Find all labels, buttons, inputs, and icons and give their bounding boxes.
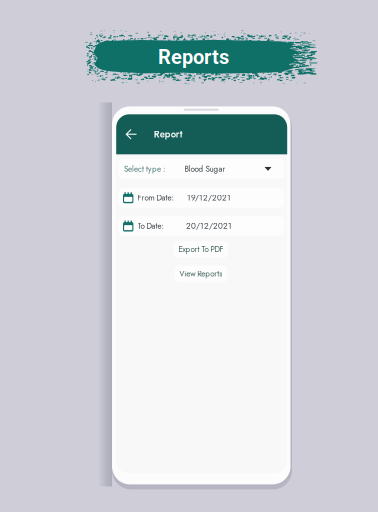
staticText: 20/12/2021 [186,220,232,232]
button[interactable]: View Reports [175,266,227,282]
staticText: To Date: [137,220,163,232]
button[interactable]: Back [116,120,143,148]
button[interactable]: Export To PDF [174,241,228,258]
staticText: 19/12/2021 [187,192,231,204]
button[interactable]: To Date: [118,216,284,236]
staticText: Blood Sugar [184,163,225,175]
staticText: Export To PDF [178,243,223,255]
staticText: From Date: [137,192,173,204]
button[interactable]: From Date: [118,188,284,207]
staticText: Select type : [124,163,165,175]
staticText: Reports [158,45,229,69]
staticText: Report [154,128,183,141]
button[interactable]: Select type : [118,159,284,179]
staticText: View Reports [179,268,222,280]
